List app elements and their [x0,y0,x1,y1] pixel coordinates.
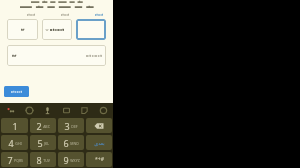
staticText: 9 [63,154,69,166]
staticText: 5 [37,137,43,149]
button[interactable]: Stickers [77,103,91,117]
button[interactable]: 7 [1,152,28,167]
staticText: JKL [44,141,49,146]
button[interactable]: 2 [30,118,56,133]
staticText: 1 [12,120,18,132]
staticText: MNO [70,141,79,146]
button[interactable]: 5 [30,135,56,150]
button[interactable]: More options [96,103,110,117]
button[interactable]: Backspace [86,118,112,133]
button[interactable]: Clipboard [59,103,73,117]
staticText: TUV [43,158,50,163]
button[interactable]: 3 [58,118,84,133]
button[interactable]: Settings [22,103,36,117]
button[interactable] [42,19,72,40]
staticText: 8 [36,154,42,166]
staticText: بعدی [94,140,105,146]
button[interactable]: 1 [1,118,28,133]
button[interactable]: 9 [58,152,84,167]
button[interactable]: Voice input [40,103,54,117]
staticText: 6 [63,137,69,149]
staticText: DEF [71,124,78,129]
button[interactable] [4,86,29,97]
staticText: 7 [7,154,13,166]
button[interactable] [7,19,38,40]
staticText: WXYZ [70,158,80,163]
button[interactable]: 6 [58,135,84,150]
button[interactable] [7,45,106,66]
staticText: 3 [64,120,70,132]
button[interactable]: *+# [86,152,112,167]
button[interactable]: 4 [1,135,28,150]
button[interactable]: بعدی [86,135,112,150]
staticText: 4 [8,137,14,149]
button[interactable]: Suggestions [3,103,17,117]
button[interactable] [76,19,106,40]
staticText: *+# [95,156,104,163]
button[interactable]: 8 [30,152,56,167]
staticText: PQRS [14,158,23,163]
staticText: 2 [36,120,42,132]
staticText: GHI [15,141,22,146]
staticText: ABC [43,124,50,129]
